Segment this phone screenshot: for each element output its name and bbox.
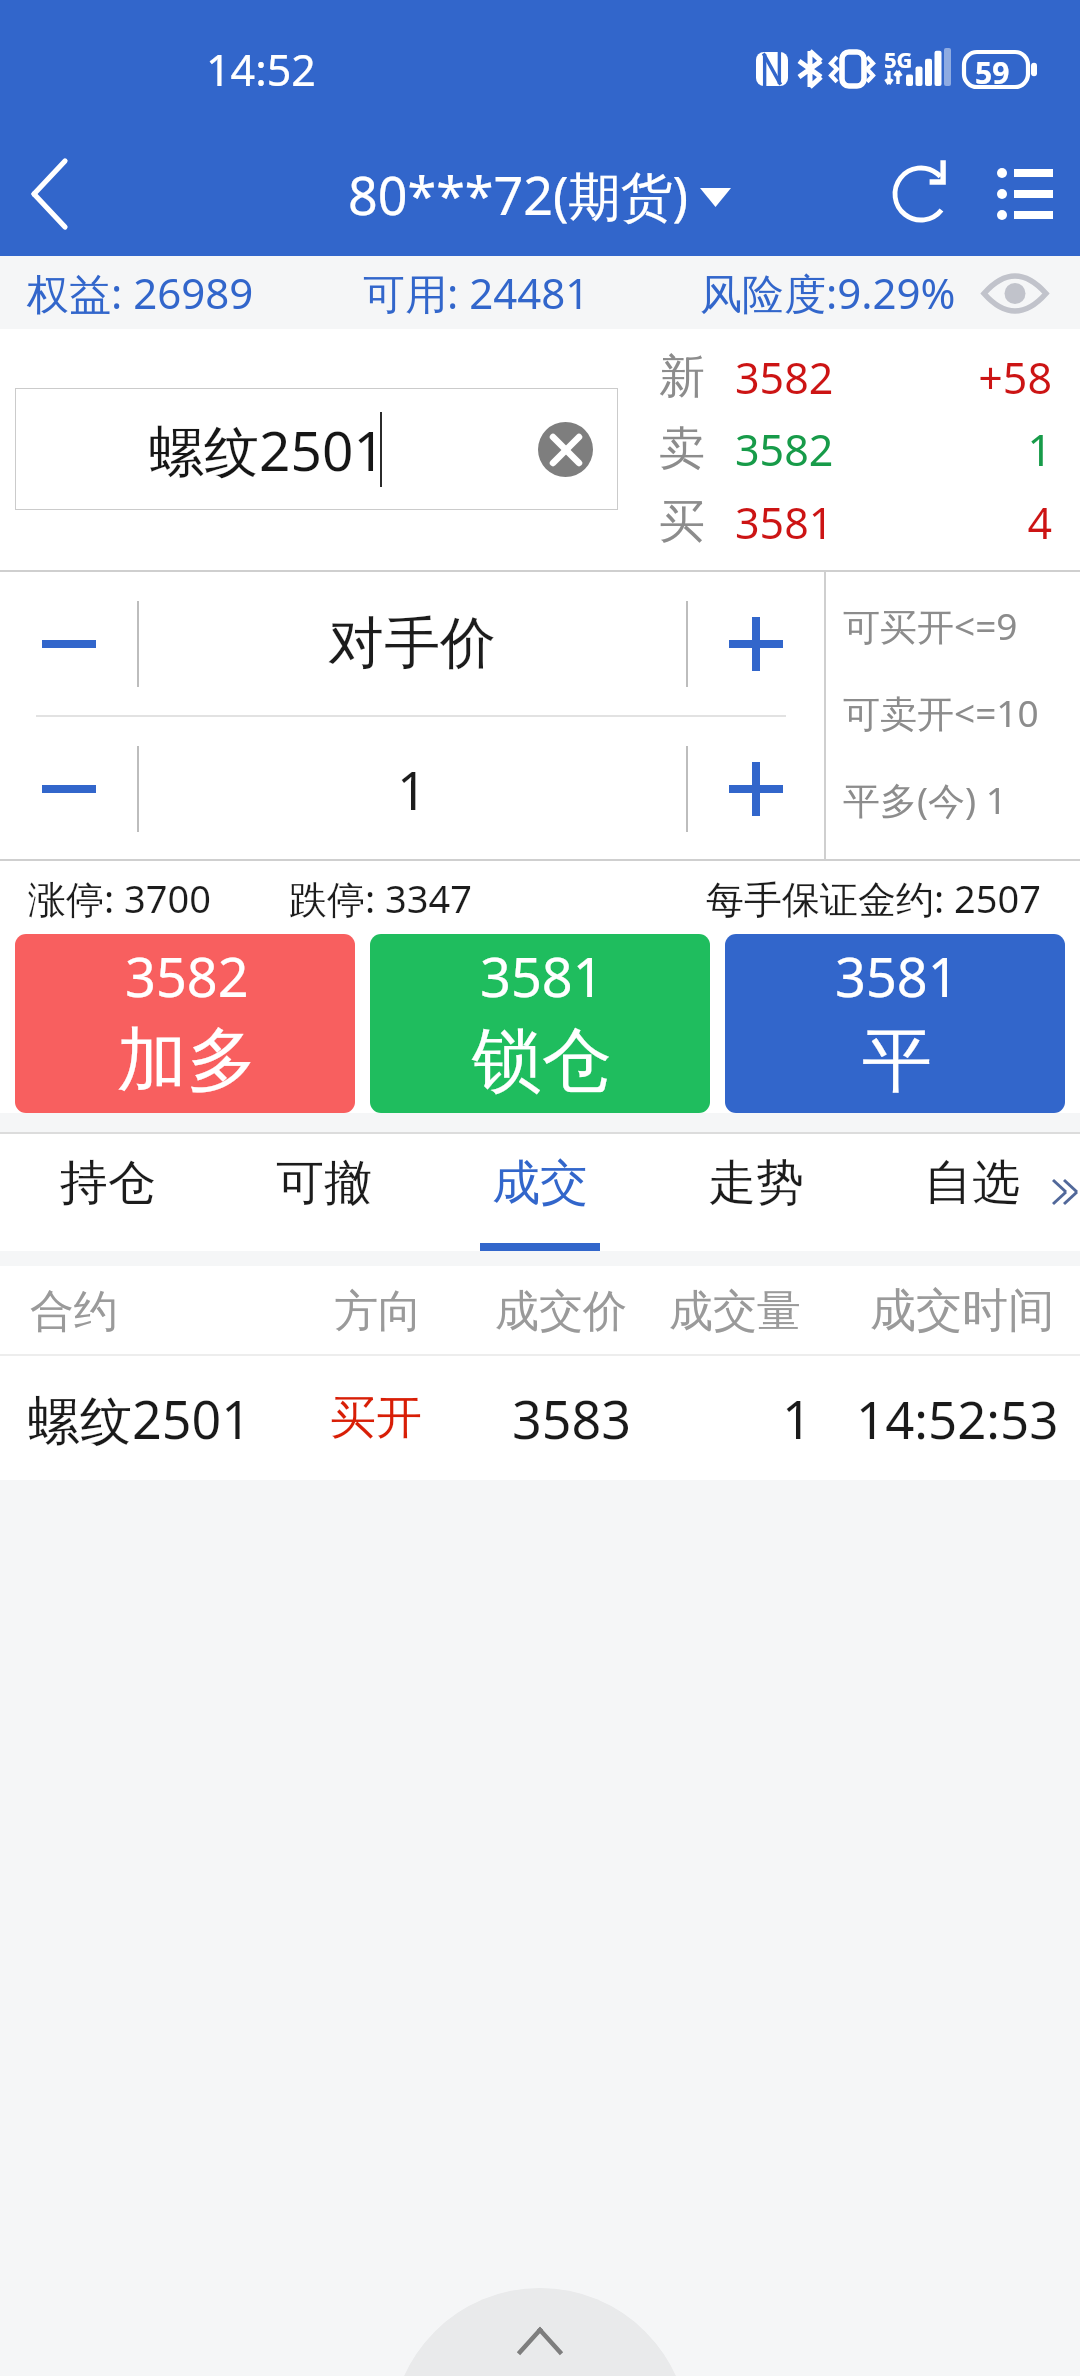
button[interactable]: Scroll to top <box>391 2288 689 2376</box>
staticText: 1 <box>397 754 427 825</box>
staticText: 加多 <box>117 1017 257 1105</box>
staticText: 方向 <box>334 1284 422 1339</box>
button[interactable]: 自选 <box>864 1134 1080 1251</box>
staticText: 5G <box>884 44 913 74</box>
button[interactable]: Increase <box>686 572 824 715</box>
staticText: 可用: 24481 <box>363 264 590 321</box>
button[interactable]: Back <box>0 132 110 256</box>
button[interactable]: 走势 <box>648 1134 864 1251</box>
button[interactable]: 3582 <box>15 934 355 1113</box>
staticText: 走势 <box>708 1153 804 1213</box>
staticText: 14:52 <box>206 40 316 99</box>
staticText: 螺纹2501 <box>149 412 385 487</box>
staticText: 成交时间 <box>870 1282 1054 1340</box>
button[interactable]: 持仓 <box>0 1134 216 1251</box>
staticText: 80***72(期货) <box>348 159 689 230</box>
staticText: 卖 <box>659 420 705 478</box>
staticText: 自选 <box>924 1153 1020 1213</box>
staticText: 59 <box>975 52 1010 93</box>
staticText: 4 <box>832 493 1052 552</box>
button[interactable]: Refresh <box>866 132 976 256</box>
staticText: 新 <box>659 348 705 406</box>
button[interactable]: Decrease <box>0 572 137 715</box>
staticText: 合约 <box>30 1284 118 1339</box>
button[interactable]: Menu <box>970 132 1080 256</box>
staticText: +58 <box>832 348 1052 407</box>
staticText: 成交价 <box>495 1284 627 1339</box>
staticText: 3581 <box>835 939 959 1013</box>
staticText: 1 <box>832 420 1052 479</box>
button[interactable]: 可撤 <box>216 1134 432 1251</box>
button[interactable]: 螺纹2501 <box>0 1356 1080 1480</box>
staticText: 可买开<=9 <box>843 600 1018 651</box>
staticText: 对手价 <box>328 608 496 679</box>
staticText: 3581 <box>735 493 834 552</box>
staticText: 权益: 26989 <box>27 264 254 321</box>
staticText: 持仓 <box>60 1153 156 1213</box>
button[interactable]: Toggle balance visibility <box>972 256 1058 329</box>
staticText: 买开 <box>330 1389 422 1447</box>
staticText: 3583 <box>512 1383 631 1454</box>
staticText: 成交量 <box>669 1284 801 1339</box>
staticText: 1 <box>782 1383 812 1454</box>
staticText: 3582 <box>735 420 834 479</box>
button[interactable]: 80***72(期货) <box>348 159 731 230</box>
button[interactable]: 3581 <box>725 934 1065 1113</box>
button[interactable]: 成交 <box>432 1134 648 1251</box>
staticText: 可卖开<=10 <box>843 687 1039 738</box>
staticText: 锁仓 <box>472 1017 612 1105</box>
staticText: 风险度:9.29% <box>700 264 956 321</box>
staticText: 买 <box>659 493 705 551</box>
staticText: 涨停: 3700 <box>28 872 212 924</box>
button[interactable]: 螺纹2501 <box>15 388 618 510</box>
staticText: 3581 <box>480 939 604 1013</box>
staticText: 平 <box>862 1017 932 1105</box>
button[interactable]: Clear text <box>538 422 593 477</box>
staticText: 3582 <box>125 939 249 1013</box>
staticText: 成交 <box>492 1153 588 1213</box>
staticText: 螺纹2501 <box>28 1383 251 1454</box>
staticText: 跌停: 3347 <box>289 872 473 924</box>
staticText: 可撤 <box>276 1153 372 1213</box>
button[interactable]: 3581 <box>370 934 710 1113</box>
staticText: 14:52:53 <box>856 1384 1059 1453</box>
button[interactable]: Increase <box>686 717 824 861</box>
staticText: 平多(今) 1 <box>843 774 1007 825</box>
button[interactable]: Decrease <box>0 717 137 861</box>
staticText: 3582 <box>735 348 834 407</box>
staticText: 每手保证金约: 2507 <box>706 872 1042 924</box>
